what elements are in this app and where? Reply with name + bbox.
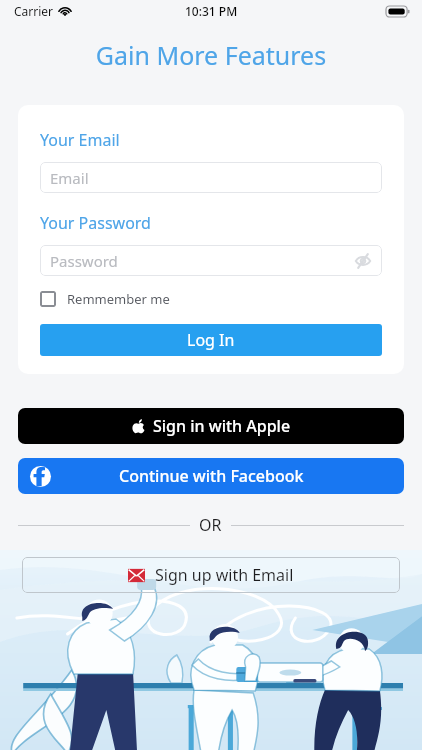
button[interactable]: Show password <box>353 251 373 271</box>
staticText: Email <box>50 168 89 188</box>
staticText: Remmember me <box>67 290 170 308</box>
staticText: 10:31 PM <box>185 3 238 19</box>
button[interactable]: Remmember me <box>40 288 170 310</box>
button[interactable]: Continue with Facebook <box>18 458 404 494</box>
staticText: OR <box>199 514 222 536</box>
staticText: Carrier <box>14 3 54 19</box>
button[interactable]: Sign in with Apple <box>18 408 404 444</box>
button[interactable]: Sign up with Email <box>22 557 400 593</box>
staticText: Password <box>50 251 118 271</box>
staticText: Gain More Features <box>0 38 422 72</box>
button[interactable]: Email <box>40 162 382 193</box>
button[interactable]: Password <box>40 245 382 276</box>
staticText: Log In <box>187 329 235 351</box>
staticText: Your Password <box>40 212 151 234</box>
staticText: Sign in with Apple <box>153 415 291 437</box>
staticText: Your Email <box>40 129 120 151</box>
staticText: Sign up with Email <box>155 564 294 586</box>
staticText: Continue with Facebook <box>119 465 304 487</box>
button[interactable]: Log In <box>40 324 382 356</box>
